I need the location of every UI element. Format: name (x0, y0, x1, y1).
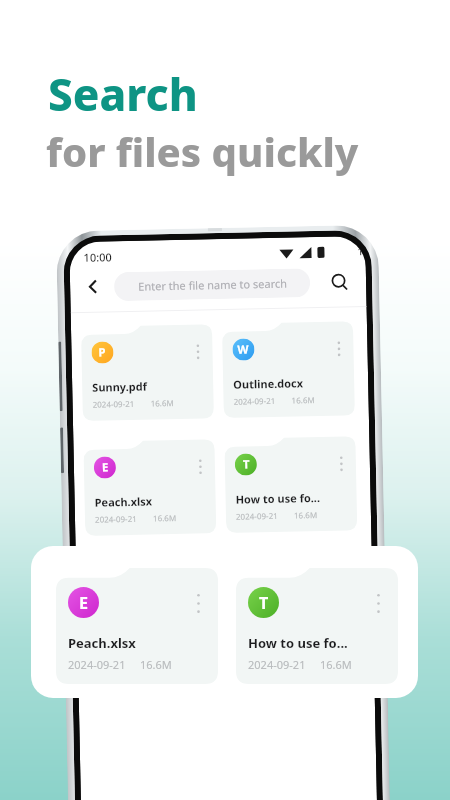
button[interactable]: Enter the file name to search (114, 268, 310, 301)
staticText: Peach.xlsx (94, 493, 153, 510)
staticText: 16.6M (320, 657, 352, 672)
staticText: 2024-09-21 (248, 657, 306, 672)
staticText: Enter the file name to search (138, 276, 287, 294)
button[interactable]: P (81, 324, 214, 421)
staticText: P (98, 344, 107, 361)
staticText: Outline.docx (233, 375, 303, 392)
staticText: 2024-09-21 (95, 513, 137, 525)
staticText: 100% (357, 244, 366, 258)
staticText: 10:00 (83, 249, 113, 265)
button[interactable]: E (83, 439, 216, 536)
staticText: 16.6M (291, 394, 316, 405)
staticText: W (237, 341, 250, 358)
staticText: Sunny.pdf (92, 379, 147, 395)
button[interactable]: W (222, 321, 355, 418)
staticText: 2024-09-21 (68, 657, 126, 672)
staticText: 16.6M (140, 657, 172, 672)
button[interactable]: More options (369, 588, 388, 619)
staticText: T (243, 456, 250, 472)
button[interactable]: More options (332, 337, 346, 360)
staticText: 2024-09-21 (92, 398, 135, 410)
staticText: Search (48, 64, 198, 124)
staticText: 16.6M (294, 509, 318, 520)
staticText: 16.6M (150, 397, 175, 408)
staticText: 2024-09-21 (233, 395, 276, 407)
button[interactable]: More options (335, 452, 348, 475)
staticText: 16.6M (153, 512, 177, 523)
button[interactable]: More options (191, 340, 205, 363)
button[interactable]: More options (194, 455, 207, 478)
staticText: E (79, 592, 89, 614)
staticText: How to use fo... (235, 490, 321, 507)
button[interactable]: More options (189, 588, 208, 619)
button[interactable]: E (56, 568, 218, 684)
staticText: E (102, 459, 109, 475)
button[interactable]: T (224, 436, 357, 533)
button[interactable]: Search (322, 264, 356, 299)
button[interactable]: T (236, 568, 398, 684)
staticText: 2024-09-21 (236, 510, 278, 522)
staticText: How to use fo... (248, 634, 348, 652)
button[interactable]: Back (76, 269, 110, 304)
staticText: for files quickly (46, 124, 359, 178)
staticText: Peach.xlsx (68, 634, 136, 652)
staticText: T (259, 592, 269, 614)
